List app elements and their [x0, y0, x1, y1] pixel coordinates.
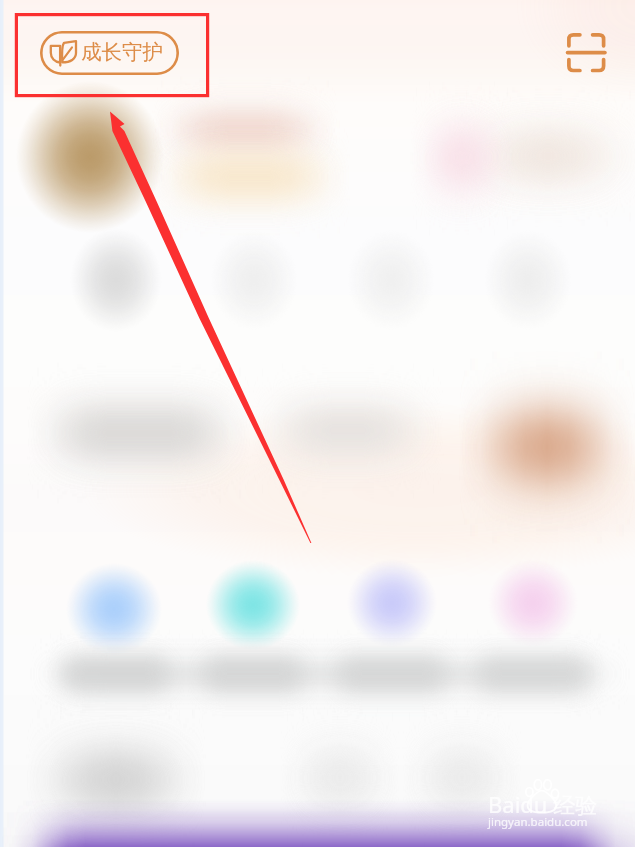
staticText: jingyan.baidu.com	[488, 814, 588, 830]
button[interactable]: 成长守护	[40, 31, 179, 75]
staticText: Baidu 经验	[488, 789, 598, 819]
button[interactable]: Scan QR code	[560, 26, 612, 78]
staticText: 成长守护	[81, 39, 163, 65]
